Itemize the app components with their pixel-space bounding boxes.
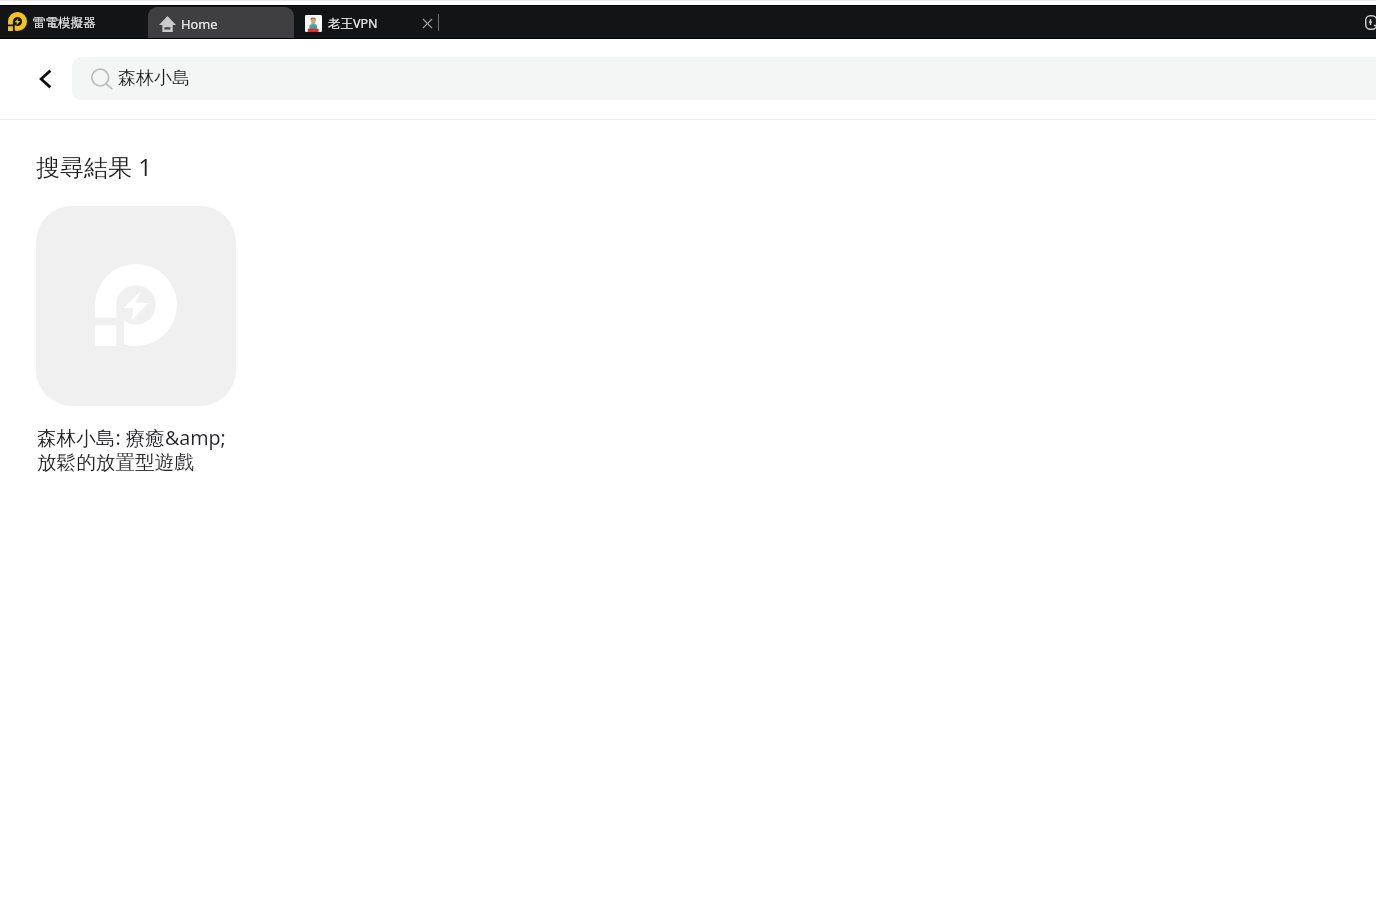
- button[interactable]: Game controls: [1355, 10, 1376, 37]
- button[interactable]: 森林小島: [72, 57, 1376, 100]
- button[interactable]: 老王VPN: [300, 5, 420, 37]
- button[interactable]: Home: [148, 7, 294, 38]
- staticText: Home: [181, 15, 218, 32]
- button[interactable]: 森林小島: 療癒&amp; 放鬆的放置型遊戲: [36, 206, 236, 475]
- button[interactable]: Close tab: [417, 5, 438, 37]
- staticText: 森林小島: 療癒&amp; 放鬆的放置型遊戲: [37, 424, 237, 475]
- staticText: 老王VPN: [328, 15, 378, 32]
- button[interactable]: Back: [30, 58, 62, 100]
- staticText: 搜尋結果 1: [36, 150, 152, 183]
- staticText: 森林小島: [118, 67, 190, 90]
- staticText: 雷電模擬器: [33, 15, 96, 31]
